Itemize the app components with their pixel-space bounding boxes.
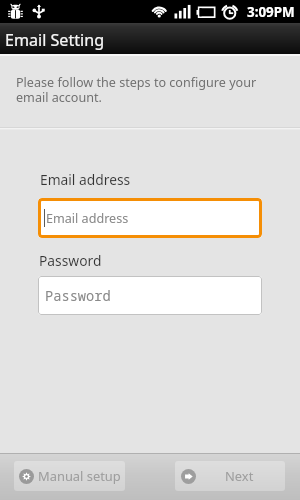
button[interactable]: Next: [175, 461, 285, 491]
staticText: Please follow the steps to configure you…: [16, 74, 257, 106]
staticText: Password: [45, 286, 111, 305]
staticText: Manual setup: [38, 467, 121, 485]
staticText: Email address: [46, 210, 129, 227]
staticText: Email address: [40, 170, 131, 189]
button[interactable]: Manual setup: [14, 461, 125, 491]
staticText: Email Setting: [5, 29, 105, 51]
staticText: Password: [39, 251, 102, 270]
staticText: 3:09PM: [247, 3, 295, 21]
button[interactable]: Password: [38, 276, 262, 315]
staticText: Next: [225, 467, 254, 485]
button[interactable]: Email address: [38, 198, 262, 238]
